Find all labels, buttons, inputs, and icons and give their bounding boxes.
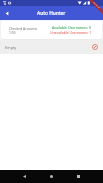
button[interactable]: Clear list xyxy=(92,44,98,50)
staticText: Unavailable Usernames: 1 xyxy=(50,30,92,35)
staticText: Empty xyxy=(5,45,17,50)
staticText: Checked Accounts xyxy=(9,26,38,30)
staticText: 1/50 xyxy=(9,31,16,35)
button[interactable]: Recents xyxy=(65,170,92,183)
button[interactable]: Back xyxy=(11,170,38,183)
button[interactable]: Home xyxy=(38,170,65,183)
button[interactable]: Checked Accounts xyxy=(1,21,102,39)
button[interactable]: Empty xyxy=(0,40,103,54)
staticText: Auto Hunter xyxy=(37,10,66,17)
staticText: Available Usernames: 0 xyxy=(52,25,91,30)
button[interactable]: Back xyxy=(0,6,13,20)
